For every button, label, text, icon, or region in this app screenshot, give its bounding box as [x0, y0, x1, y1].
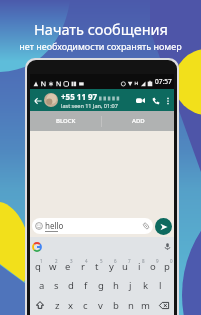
staticText: n [128, 299, 134, 312]
button[interactable]: Video call [134, 94, 147, 107]
staticText: e [65, 260, 71, 273]
staticText: hello [45, 220, 64, 231]
button[interactable]: BLOCK [30, 111, 101, 131]
staticText: a [39, 279, 45, 292]
staticText: 3 [70, 258, 73, 264]
staticText: 2 [55, 258, 58, 264]
button[interactable]: z [50, 295, 64, 315]
button[interactable]: d [63, 276, 78, 295]
button[interactable]: y [104, 256, 118, 276]
button[interactable]: Backspace [153, 295, 174, 315]
button[interactable]: r [75, 256, 90, 276]
button[interactable]: o [146, 256, 160, 276]
button[interactable]: k [138, 276, 153, 295]
staticText: u [122, 260, 128, 273]
staticText: z [55, 299, 60, 312]
button[interactable]: n [123, 295, 138, 315]
button[interactable]: g [93, 276, 108, 295]
button[interactable]: s [49, 276, 63, 295]
staticText: y [109, 260, 114, 273]
staticText: r [81, 260, 85, 273]
staticText: b [113, 299, 119, 312]
staticText: ADD [132, 117, 145, 125]
button[interactable]: Call [149, 94, 162, 107]
button[interactable]: h [108, 276, 123, 295]
staticText: o [150, 260, 156, 273]
button[interactable]: q [30, 256, 45, 276]
button[interactable]: j [123, 276, 138, 295]
staticText: f [84, 279, 88, 292]
staticText: 5 [100, 258, 103, 264]
staticText: 6 [114, 258, 117, 264]
staticText: d [68, 279, 74, 292]
staticText: m [141, 299, 150, 312]
button[interactable]: x [64, 295, 78, 315]
staticText: x [68, 299, 74, 312]
button[interactable]: f [78, 276, 93, 295]
staticText: g [98, 279, 104, 292]
button[interactable]: p [160, 256, 174, 276]
button[interactable]: b [108, 295, 123, 315]
staticText: 4 [85, 258, 88, 264]
button[interactable]: Back [32, 95, 43, 106]
button[interactable]: More options [163, 96, 172, 105]
button[interactable]: v [93, 295, 108, 315]
button[interactable]: i [132, 256, 146, 276]
button[interactable]: a [35, 276, 49, 295]
staticText: BLOCK [56, 117, 76, 125]
button[interactable]: w [45, 256, 60, 276]
staticText: нет необходимости сохранять номер [19, 40, 182, 52]
staticText: 8 [142, 258, 145, 264]
button[interactable]: Send [155, 218, 172, 235]
staticText: j [129, 279, 132, 292]
staticText: 1 [40, 258, 43, 264]
staticText: s [54, 279, 59, 292]
staticText: h [113, 279, 119, 292]
button[interactable]: u [118, 256, 132, 276]
staticText: 0 [170, 258, 173, 264]
staticText: l [159, 279, 162, 292]
staticText: k [143, 279, 149, 292]
staticText: q [35, 260, 41, 273]
staticText: w [49, 260, 57, 273]
staticText: c [83, 299, 88, 312]
staticText: 7 [128, 258, 131, 264]
staticText: 07:57 [155, 77, 172, 86]
button[interactable]: l [153, 276, 168, 295]
button[interactable]: m [138, 295, 153, 315]
staticText: t [95, 260, 99, 273]
staticText: v [98, 299, 103, 312]
button[interactable]: t [90, 256, 104, 276]
button[interactable]: Shift [30, 295, 50, 315]
staticText: 9 [156, 258, 159, 264]
button[interactable]: c [78, 295, 93, 315]
staticText: +55 11 97 [61, 91, 98, 102]
button[interactable]: e [60, 256, 75, 276]
staticText: p [164, 260, 170, 273]
staticText: last seen 11 Jan, 01:07 [61, 102, 118, 109]
staticText: i [138, 260, 141, 273]
staticText: Начать сообщения [34, 19, 168, 39]
button[interactable]: ADD [102, 111, 174, 131]
